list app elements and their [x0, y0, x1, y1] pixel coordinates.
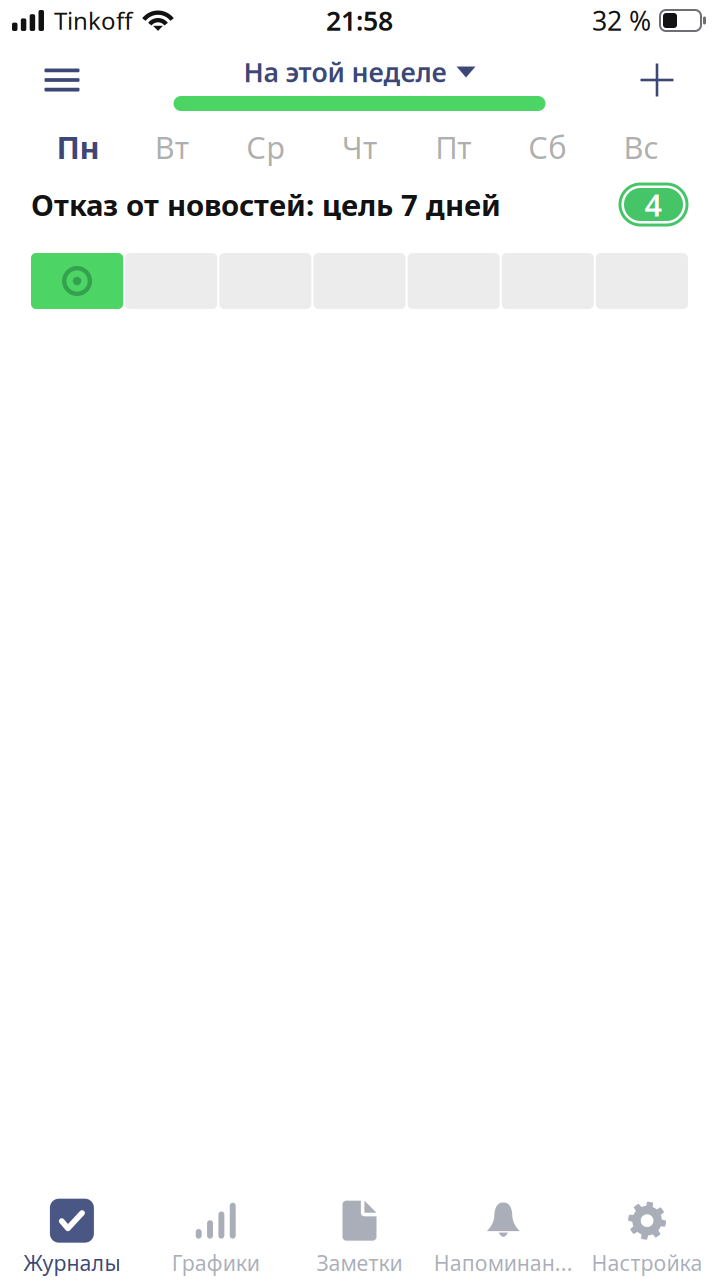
button[interactable]: Журналы: [0, 1197, 144, 1277]
staticText: Ср: [246, 127, 285, 167]
button[interactable]: Menu: [30, 55, 94, 105]
staticText: На этой неделе: [243, 54, 446, 90]
button[interactable]: 4: [619, 183, 688, 226]
staticText: Чт: [342, 127, 377, 167]
button[interactable]: Чт: [313, 127, 406, 167]
staticText: Заметки: [316, 1249, 402, 1277]
button[interactable]: [31, 253, 123, 309]
button[interactable]: Сб: [500, 127, 594, 167]
button[interactable]: На этой неделе: [243, 55, 475, 89]
staticText: 4: [644, 184, 662, 225]
staticText: Вс: [624, 127, 659, 167]
staticText: Отказ от новостей: цель 7 дней: [31, 185, 501, 224]
staticText: Tinkoff: [54, 5, 133, 36]
staticText: Настройка: [592, 1249, 703, 1277]
button[interactable]: Напоминан...: [431, 1197, 575, 1277]
staticText: Пн: [56, 127, 99, 167]
button[interactable]: Ср: [219, 127, 313, 167]
staticText: 21:58: [326, 3, 393, 38]
button[interactable]: Пт: [406, 127, 500, 167]
staticText: Пт: [435, 127, 471, 167]
button[interactable]: Пн: [31, 127, 125, 167]
button[interactable]: Графики: [144, 1197, 288, 1277]
button[interactable]: Вт: [125, 127, 219, 167]
button[interactable]: Вс: [594, 127, 688, 167]
staticText: Напоминан...: [434, 1249, 573, 1277]
staticText: Вт: [155, 127, 189, 167]
staticText: Журналы: [23, 1249, 120, 1277]
staticText: Сб: [528, 127, 566, 167]
button[interactable]: Add: [625, 55, 689, 105]
button[interactable]: Заметки: [288, 1197, 431, 1277]
staticText: Графики: [172, 1249, 260, 1277]
button[interactable]: Настройка: [575, 1197, 719, 1277]
staticText: 32 %: [592, 3, 651, 38]
